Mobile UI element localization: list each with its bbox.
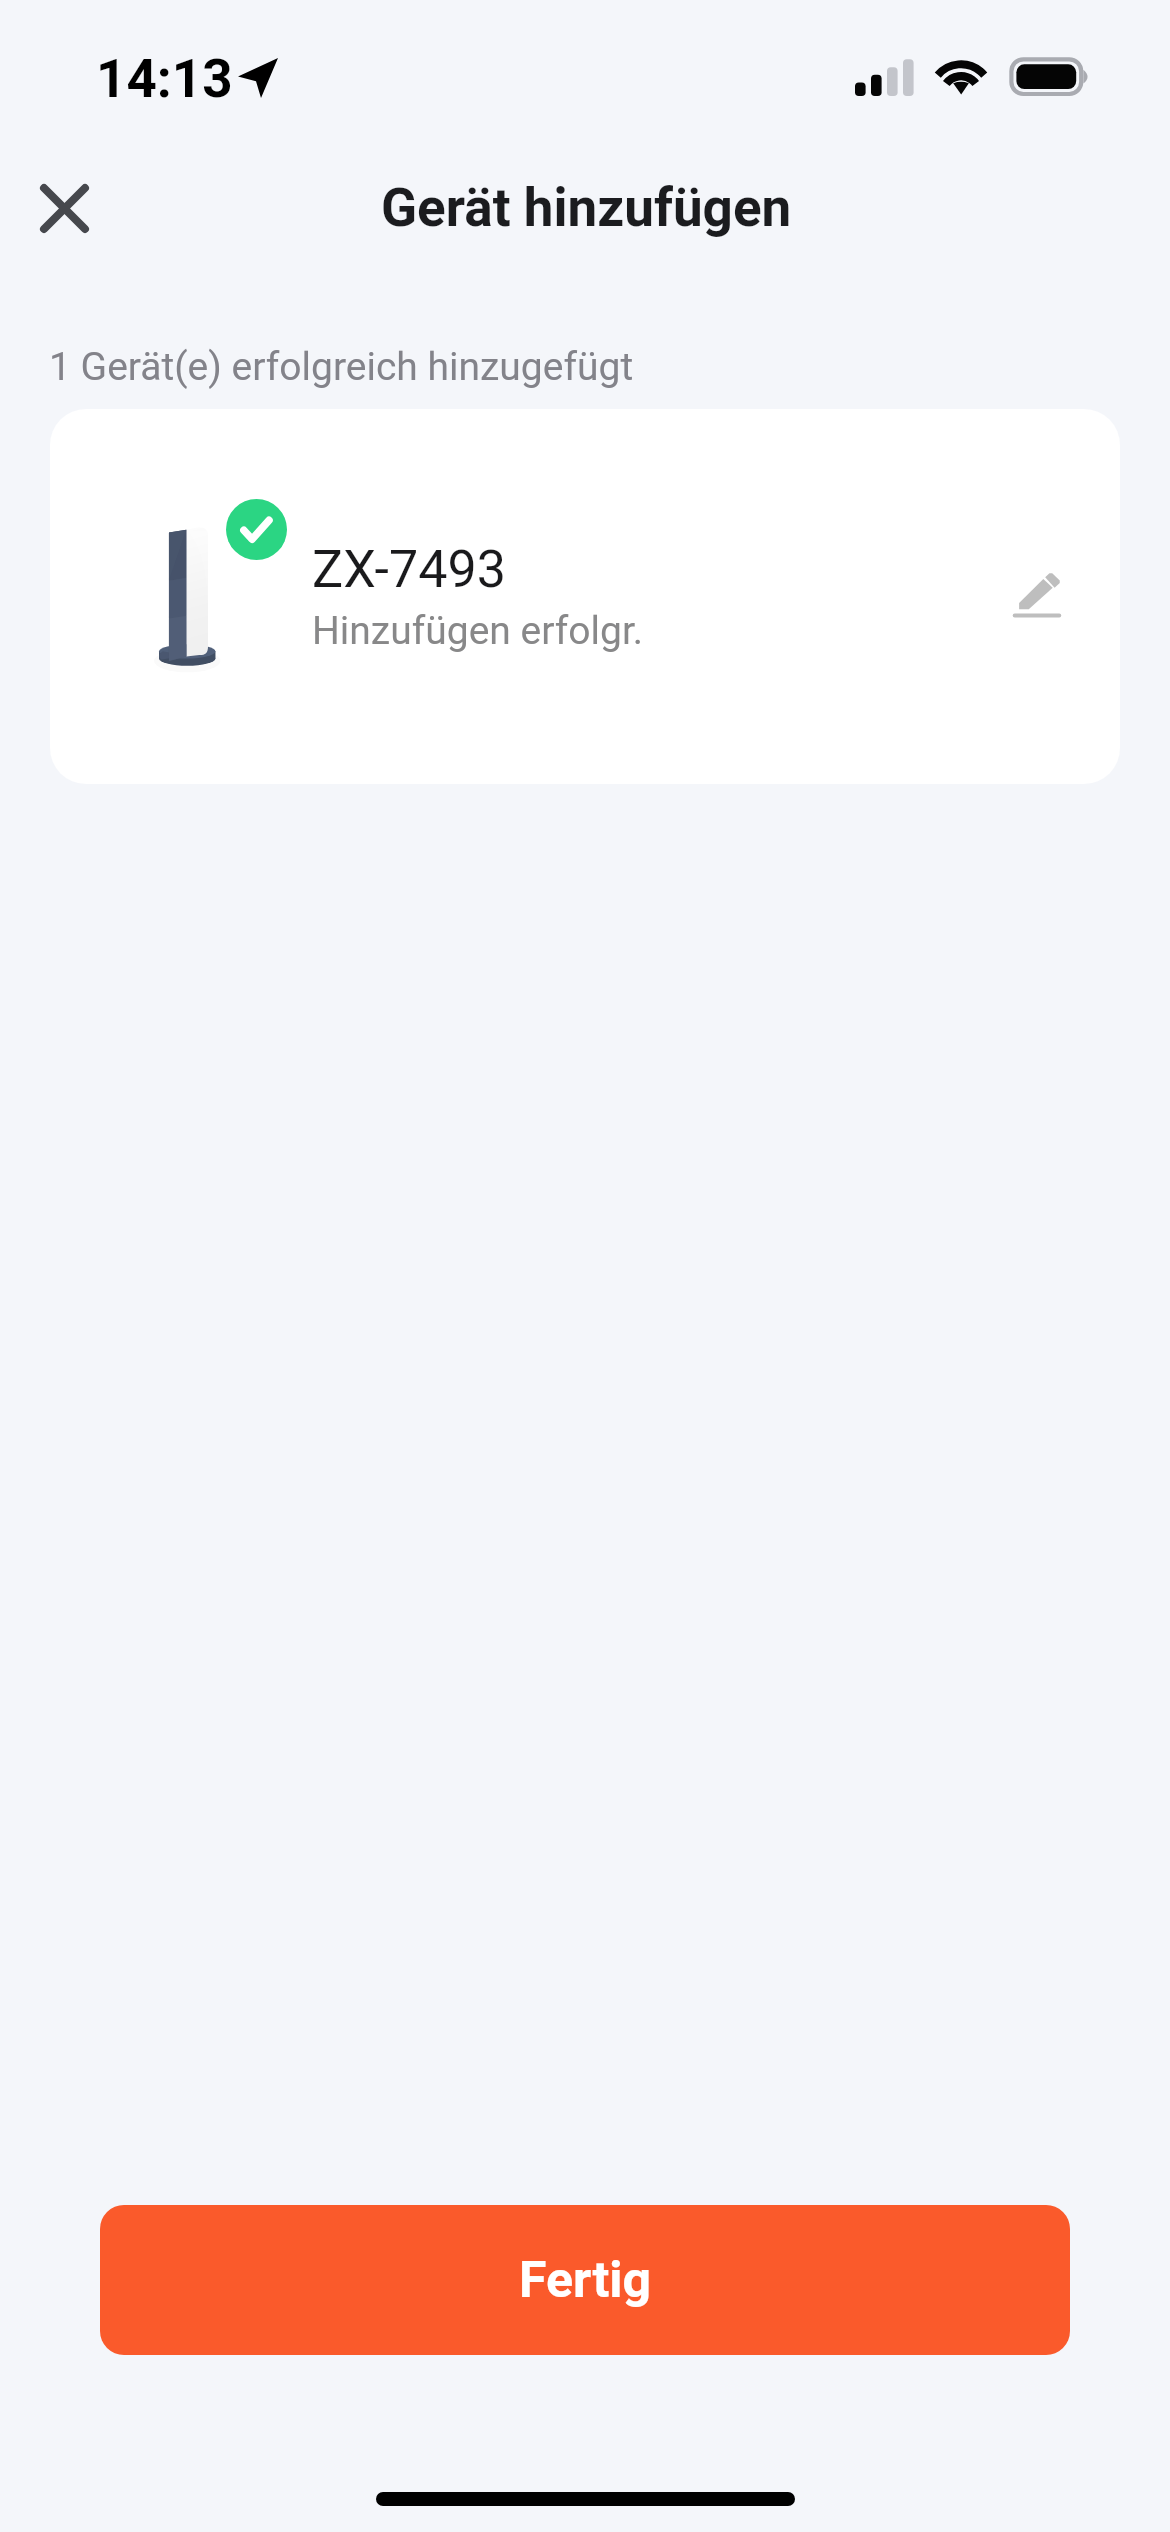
staticText: Hinzufügen erfolgr. [312, 608, 644, 654]
button[interactable]: Close [16, 160, 112, 256]
staticText: ZX-7493 [312, 539, 506, 600]
staticText: Gerät hinzufügen [381, 177, 792, 239]
button[interactable]: Fertig [100, 2205, 1070, 2355]
button[interactable]: ZX-7493 [50, 409, 1120, 784]
staticText: 14:13 [96, 48, 233, 110]
staticText: Fertig [519, 2251, 652, 2310]
button[interactable]: Rename [981, 540, 1091, 650]
staticText: 1 Gerät(e) erfolgreich hinzugefügt [49, 344, 634, 390]
